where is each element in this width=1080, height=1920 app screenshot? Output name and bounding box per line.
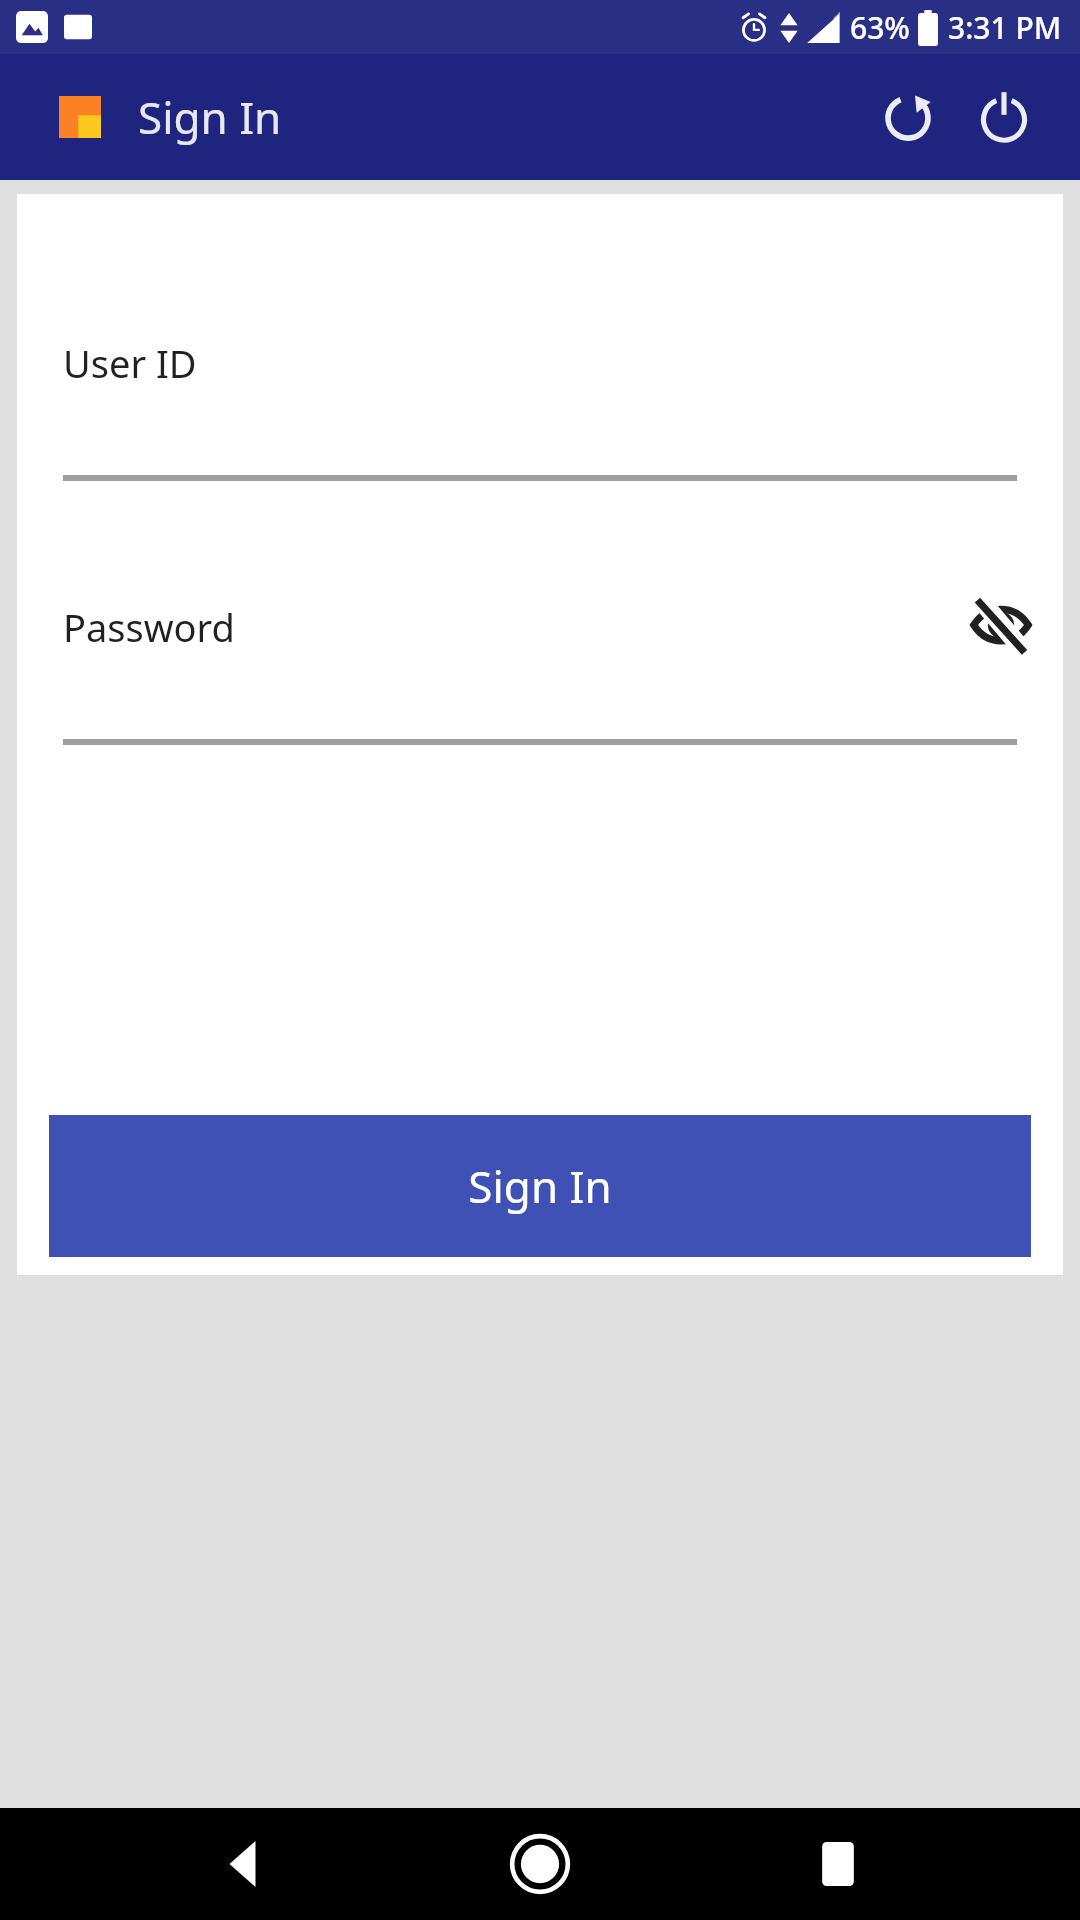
button[interactable]: User ID: [17, 321, 1063, 481]
button[interactable]: Back: [188, 1809, 298, 1919]
button[interactable]: Show password: [963, 587, 1039, 663]
button[interactable]: Password: [17, 585, 1063, 745]
staticText: User ID: [63, 337, 197, 389]
staticText: 3:31 PM: [948, 7, 1062, 48]
staticText: Sign In: [468, 1156, 612, 1216]
staticText: Sign In: [138, 87, 282, 147]
button[interactable]: Sign In: [49, 1115, 1031, 1257]
staticText: 63%: [850, 7, 910, 48]
button[interactable]: Refresh: [860, 69, 956, 165]
button[interactable]: Home: [485, 1809, 595, 1919]
button[interactable]: Recent apps: [783, 1809, 893, 1919]
staticText: Password: [63, 601, 235, 653]
button[interactable]: Power off: [956, 69, 1052, 165]
